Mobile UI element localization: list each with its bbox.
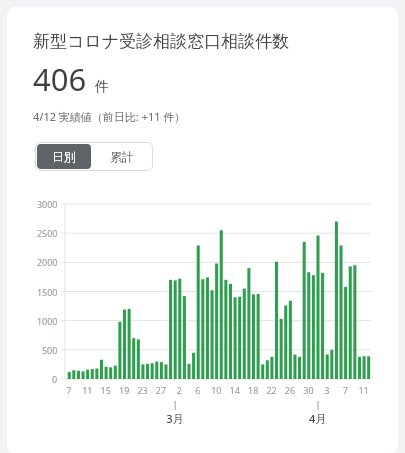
staticText: 4/12 実績値（前日比: +11 件）: [33, 109, 186, 124]
other: Daily case bar chart: [7, 192, 398, 432]
staticText: 日別: [52, 149, 76, 164]
staticText: 新型コロナ受診相談窓口相談件数: [33, 31, 290, 52]
button[interactable]: 日別: [37, 144, 91, 169]
staticText: 406: [33, 58, 87, 100]
staticText: 累計: [110, 149, 134, 164]
button[interactable]: 累計: [93, 144, 151, 169]
staticText: 件: [95, 78, 109, 96]
